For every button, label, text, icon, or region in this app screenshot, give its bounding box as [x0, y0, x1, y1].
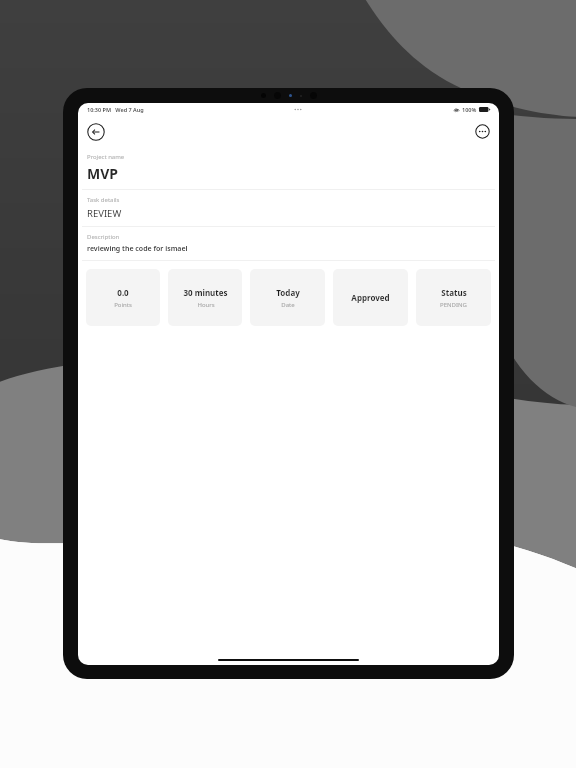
staticText: 10:30 PM Wed 7 Aug [87, 106, 144, 113]
staticText: Date [281, 301, 295, 309]
staticText: reviewing the code for ismael [87, 244, 188, 254]
staticText: MVP [87, 164, 118, 183]
button[interactable]: Back [87, 123, 105, 141]
staticText: Approved [351, 292, 390, 303]
staticText: 30 minutes [183, 287, 228, 298]
staticText: Points [114, 301, 132, 309]
staticText: Status [441, 287, 467, 298]
staticText: Project name [87, 153, 125, 161]
staticText: Today [276, 287, 300, 298]
button[interactable]: More options [475, 124, 490, 139]
staticText: 0.0 [117, 287, 129, 298]
staticText: 100% [462, 106, 477, 113]
staticText: Hours [197, 301, 215, 309]
staticText: PENDING [440, 301, 467, 309]
staticText: Task details [87, 196, 120, 204]
button[interactable]: 30 minutes [168, 269, 242, 326]
staticText: REVIEW [87, 207, 122, 220]
button[interactable]: 0.0 [86, 269, 160, 326]
staticText: Description [87, 233, 120, 241]
button[interactable]: Status [416, 269, 491, 326]
button[interactable]: Today [250, 269, 325, 326]
button[interactable]: Approved [333, 269, 408, 326]
